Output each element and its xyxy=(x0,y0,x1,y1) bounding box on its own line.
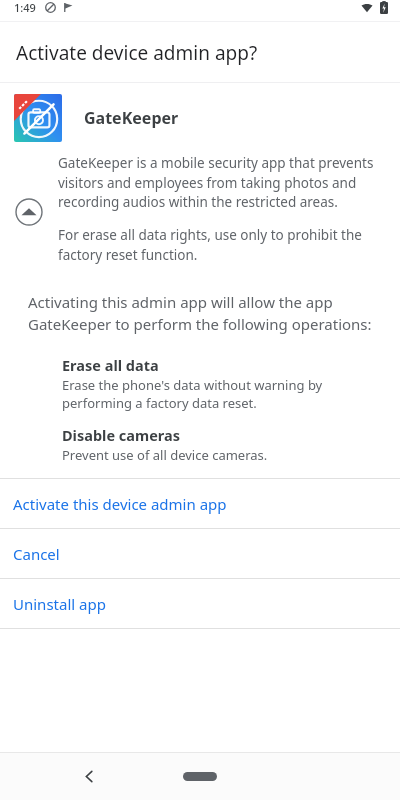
staticText: Erase the phone's data without warning b… xyxy=(62,376,374,412)
staticText: Disable cameras xyxy=(62,425,180,445)
staticText: 1:49 xyxy=(14,0,36,15)
staticText: Activating this admin app will allow the… xyxy=(28,292,378,335)
button[interactable]: Collapse description xyxy=(12,195,46,229)
staticText: Prevent use of all device cameras. xyxy=(62,446,268,464)
button[interactable]: Back xyxy=(74,761,104,791)
button[interactable]: Cancel xyxy=(0,529,400,578)
staticText: GateKeeper is a mobile security app that… xyxy=(58,154,386,211)
button[interactable]: Home xyxy=(178,765,222,787)
staticText: Cancel xyxy=(13,544,60,564)
staticText: GateKeeper xyxy=(84,107,179,129)
staticText: Activate this device admin app xyxy=(13,494,227,514)
staticText: For erase all data rights, use only to p… xyxy=(58,226,386,264)
staticText: Activate device admin app? xyxy=(16,40,258,66)
staticText: Uninstall app xyxy=(13,594,106,614)
staticText: Erase all data xyxy=(62,355,159,375)
button[interactable]: Uninstall app xyxy=(0,579,400,628)
button[interactable]: Activate this device admin app xyxy=(0,479,400,528)
